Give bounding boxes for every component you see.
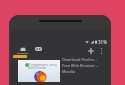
staticText: Cryptominers using xyxy=(29,63,57,67)
button[interactable]: More options xyxy=(97,45,106,57)
staticText: Free Web Browser – xyxy=(62,63,99,68)
button[interactable]: Tabs xyxy=(15,45,31,57)
staticText: latest Firefox xyxy=(28,66,47,70)
staticText: Mozilla xyxy=(62,69,75,74)
button[interactable]: New tab xyxy=(85,45,97,57)
staticText: Download Firefox – xyxy=(62,57,97,62)
button[interactable]: Cryptominers using xyxy=(11,54,110,85)
staticText: 31% xyxy=(98,39,107,44)
button[interactable]: Private tabs xyxy=(32,45,46,57)
